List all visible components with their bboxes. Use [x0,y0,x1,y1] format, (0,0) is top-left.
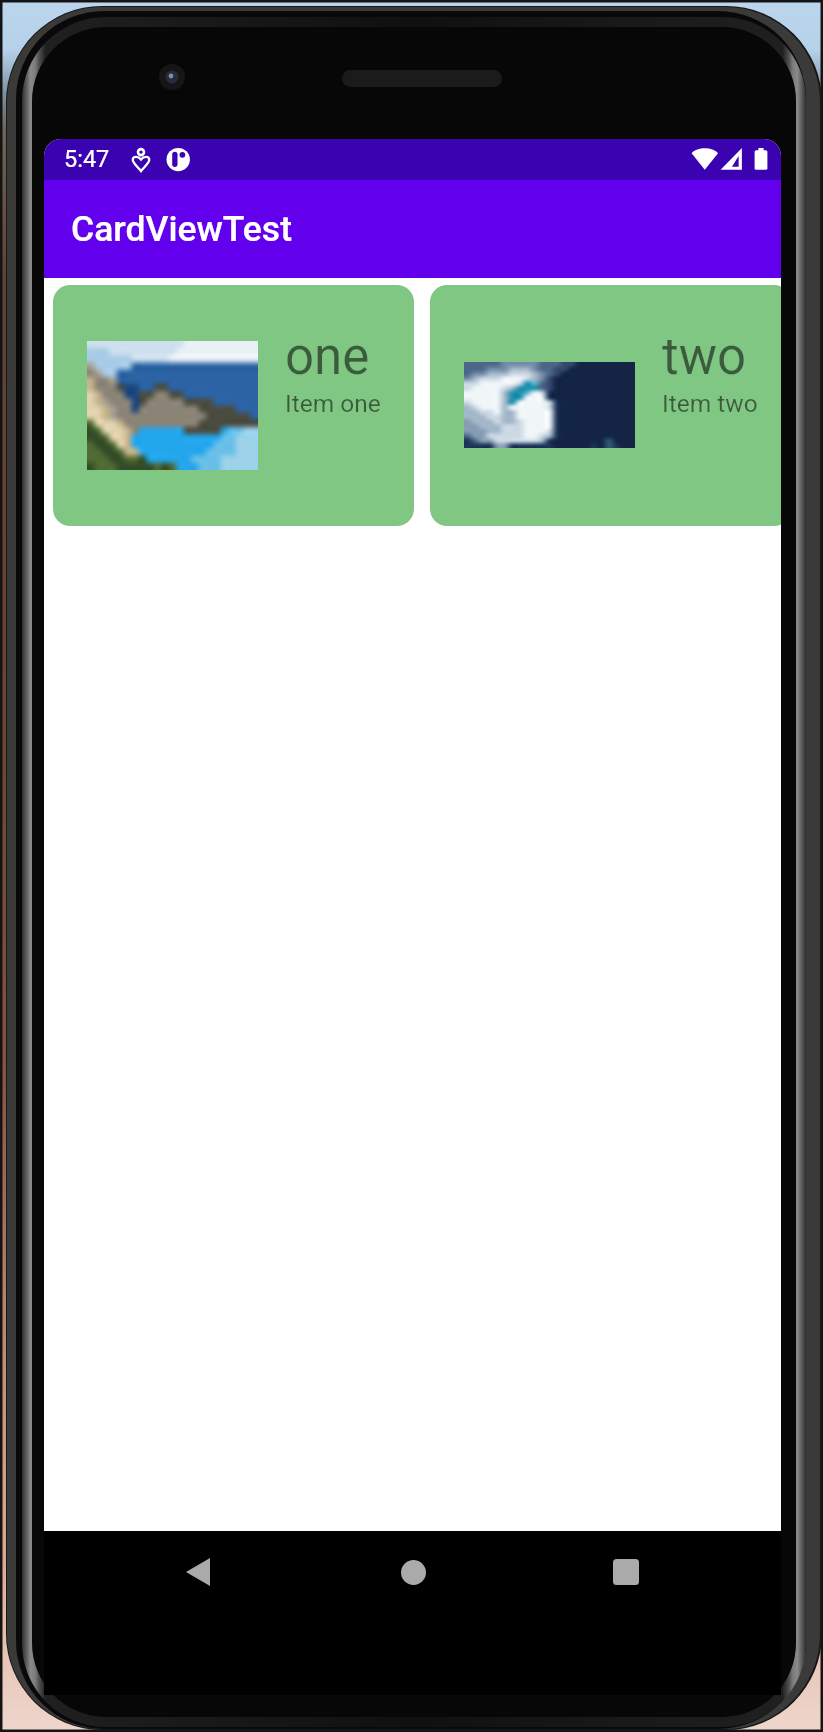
staticText: CardViewTest [71,208,292,250]
staticText: 5:47 [64,145,110,173]
button[interactable]: Back [153,1531,243,1613]
button[interactable]: Recents [581,1531,671,1613]
button[interactable]: two [430,285,781,526]
staticText: two [662,327,747,387]
staticText: Item one [285,389,381,418]
staticText: one [285,327,370,387]
staticText: Item two [662,389,758,418]
button[interactable]: Home [368,1531,458,1613]
button[interactable]: one [53,285,414,526]
button[interactable]: CardViewTest [44,180,781,278]
